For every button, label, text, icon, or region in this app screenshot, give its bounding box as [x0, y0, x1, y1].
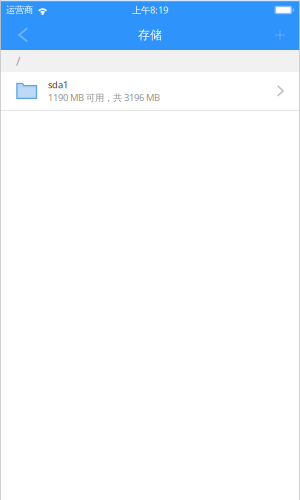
button[interactable]: Add	[246, 20, 300, 50]
staticText: 运营商	[6, 4, 33, 16]
staticText: 存储	[138, 28, 162, 42]
staticText: /	[16, 53, 20, 69]
staticText: 1190 MB 可用，共 3196 MB	[48, 91, 160, 104]
staticText: 上午8:19	[132, 4, 168, 16]
staticText: sda1	[48, 78, 68, 91]
button[interactable]: sda1	[0, 72, 300, 111]
button[interactable]: Back	[0, 20, 54, 50]
